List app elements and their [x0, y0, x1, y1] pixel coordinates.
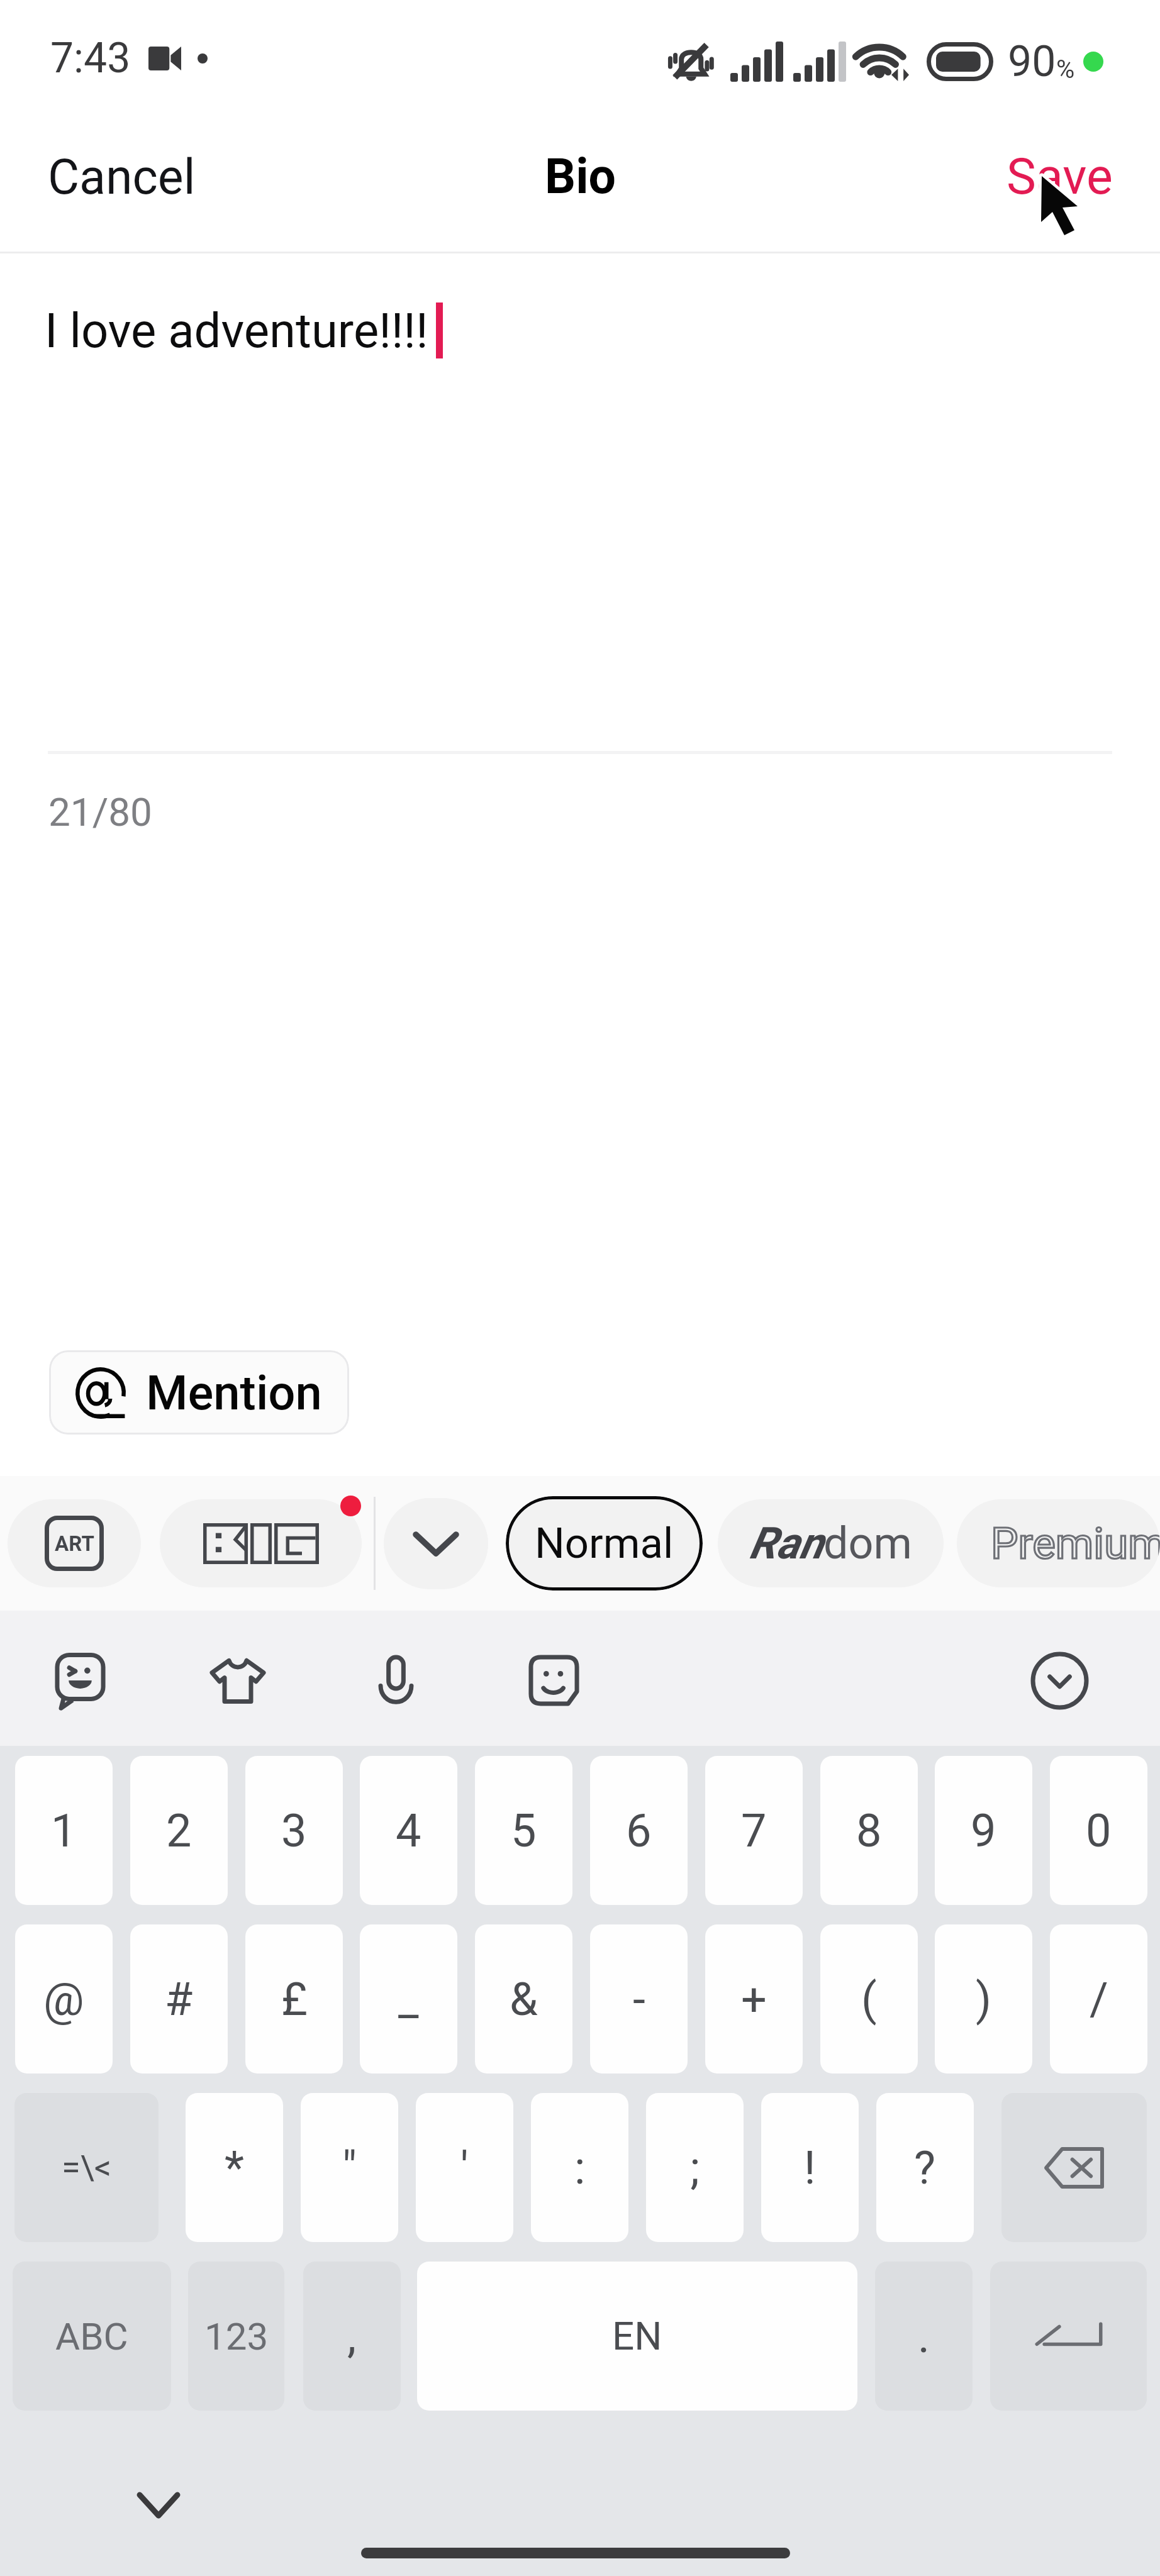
- button[interactable]: *: [186, 2093, 283, 2242]
- button[interactable]: :: [531, 2093, 628, 2242]
- button[interactable]: Emoji: [42, 1643, 118, 1718]
- staticText: .: [918, 2310, 930, 2363]
- button[interactable]: 7: [705, 1756, 803, 1905]
- staticText: 3: [281, 1804, 307, 1857]
- staticText: Mention: [146, 1365, 322, 1421]
- staticText: 8: [856, 1804, 882, 1857]
- staticText: 2: [166, 1804, 192, 1857]
- button[interactable]: 9: [935, 1756, 1032, 1905]
- button[interactable]: #: [130, 1924, 228, 2074]
- button[interactable]: Hide keyboard: [124, 2470, 193, 2540]
- button[interactable]: £: [245, 1924, 343, 2074]
- button[interactable]: ;: [646, 2093, 744, 2242]
- staticText: Save: [1007, 148, 1113, 206]
- button[interactable]: -: [590, 1924, 688, 2074]
- staticText: dom: [823, 1518, 912, 1569]
- button[interactable]: Normal: [506, 1496, 703, 1591]
- staticText: 5: [511, 1804, 537, 1857]
- button[interactable]: 0: [1050, 1756, 1147, 1905]
- button[interactable]: .: [875, 2262, 973, 2411]
- button[interactable]: Art text style: [8, 1499, 141, 1587]
- button[interactable]: ': [416, 2093, 513, 2242]
- staticText: ): [976, 1973, 992, 2026]
- button[interactable]: Backspace: [1001, 2093, 1147, 2242]
- staticText: ": [342, 2141, 357, 2194]
- staticText: 21/80: [48, 789, 152, 835]
- button[interactable]: Expand styles: [384, 1498, 488, 1589]
- staticText: Ran: [749, 1518, 823, 1569]
- staticText: ABC: [55, 2314, 128, 2358]
- button[interactable]: +: [705, 1924, 803, 2074]
- staticText: ,: [347, 2310, 357, 2363]
- staticText: &: [510, 1973, 538, 2026]
- button[interactable]: Ran: [718, 1499, 944, 1587]
- staticText: 7: [741, 1804, 767, 1857]
- staticText: -: [633, 1973, 645, 2026]
- button[interactable]: Save: [975, 129, 1160, 225]
- button[interactable]: !: [761, 2093, 859, 2242]
- staticText: Cancel: [48, 149, 196, 206]
- button[interactable]: @: [15, 1924, 113, 2074]
- button[interactable]: 4: [360, 1756, 457, 1905]
- button[interactable]: Smiley: [516, 1643, 591, 1718]
- button[interactable]: (: [820, 1924, 918, 2074]
- staticText: 0: [1086, 1804, 1112, 1857]
- staticText: !: [804, 2141, 816, 2194]
- staticText: _: [398, 1973, 419, 2026]
- button[interactable]: 6: [590, 1756, 688, 1905]
- staticText: Premium: [991, 1518, 1160, 1569]
- staticText: @: [43, 1973, 84, 2026]
- staticText: Normal: [535, 1519, 674, 1568]
- staticText: :: [574, 2141, 586, 2194]
- button[interactable]: EN: [417, 2262, 857, 2411]
- button[interactable]: 2: [130, 1756, 228, 1905]
- button[interactable]: 5: [475, 1756, 572, 1905]
- button[interactable]: Stickers: [200, 1643, 276, 1718]
- staticText: I love adventure!!!!: [45, 303, 428, 358]
- button[interactable]: _: [360, 1924, 457, 2074]
- staticText: ?: [914, 2141, 936, 2194]
- staticText: 7:43: [50, 34, 131, 82]
- button[interactable]: 1: [15, 1756, 113, 1905]
- button[interactable]: 8: [820, 1756, 918, 1905]
- staticText: 1: [51, 1804, 77, 1857]
- staticText: ;: [690, 2141, 700, 2194]
- staticText: %: [1056, 55, 1075, 84]
- button[interactable]: ,: [303, 2262, 401, 2411]
- button[interactable]: 3: [245, 1756, 343, 1905]
- staticText: £: [281, 1973, 308, 2026]
- staticText: 4: [396, 1804, 421, 1857]
- staticText: ': [460, 2141, 469, 2194]
- button[interactable]: =\<: [14, 2093, 159, 2242]
- button[interactable]: Premium: [957, 1499, 1160, 1587]
- button[interactable]: 123: [188, 2262, 284, 2411]
- staticText: =\<: [62, 2148, 112, 2187]
- button[interactable]: Voice input: [358, 1643, 433, 1718]
- button[interactable]: &: [475, 1924, 572, 2074]
- button[interactable]: Mention: [49, 1350, 349, 1435]
- staticText: +: [741, 1973, 767, 2026]
- staticText: 90: [1008, 36, 1056, 87]
- staticText: ART: [55, 1531, 94, 1556]
- staticText: EN: [612, 2313, 662, 2359]
- staticText: /: [1090, 1973, 1108, 2026]
- staticText: 123: [204, 2314, 269, 2358]
- button[interactable]: Collapse toolbar: [1025, 1646, 1094, 1715]
- button[interactable]: ): [935, 1924, 1032, 2074]
- staticText: 9: [971, 1804, 996, 1857]
- button[interactable]: Big text style: [160, 1499, 362, 1587]
- button[interactable]: ": [301, 2093, 398, 2242]
- button[interactable]: Cancel: [0, 130, 227, 225]
- staticText: #: [165, 1973, 193, 2026]
- staticText: *: [225, 2141, 245, 2194]
- button[interactable]: /: [1050, 1924, 1147, 2074]
- button[interactable]: Enter: [990, 2262, 1147, 2411]
- staticText: 6: [626, 1804, 652, 1857]
- staticText: Bio: [545, 148, 616, 205]
- button[interactable]: ?: [876, 2093, 974, 2242]
- button[interactable]: ABC: [13, 2262, 171, 2411]
- staticText: (: [861, 1973, 877, 2026]
